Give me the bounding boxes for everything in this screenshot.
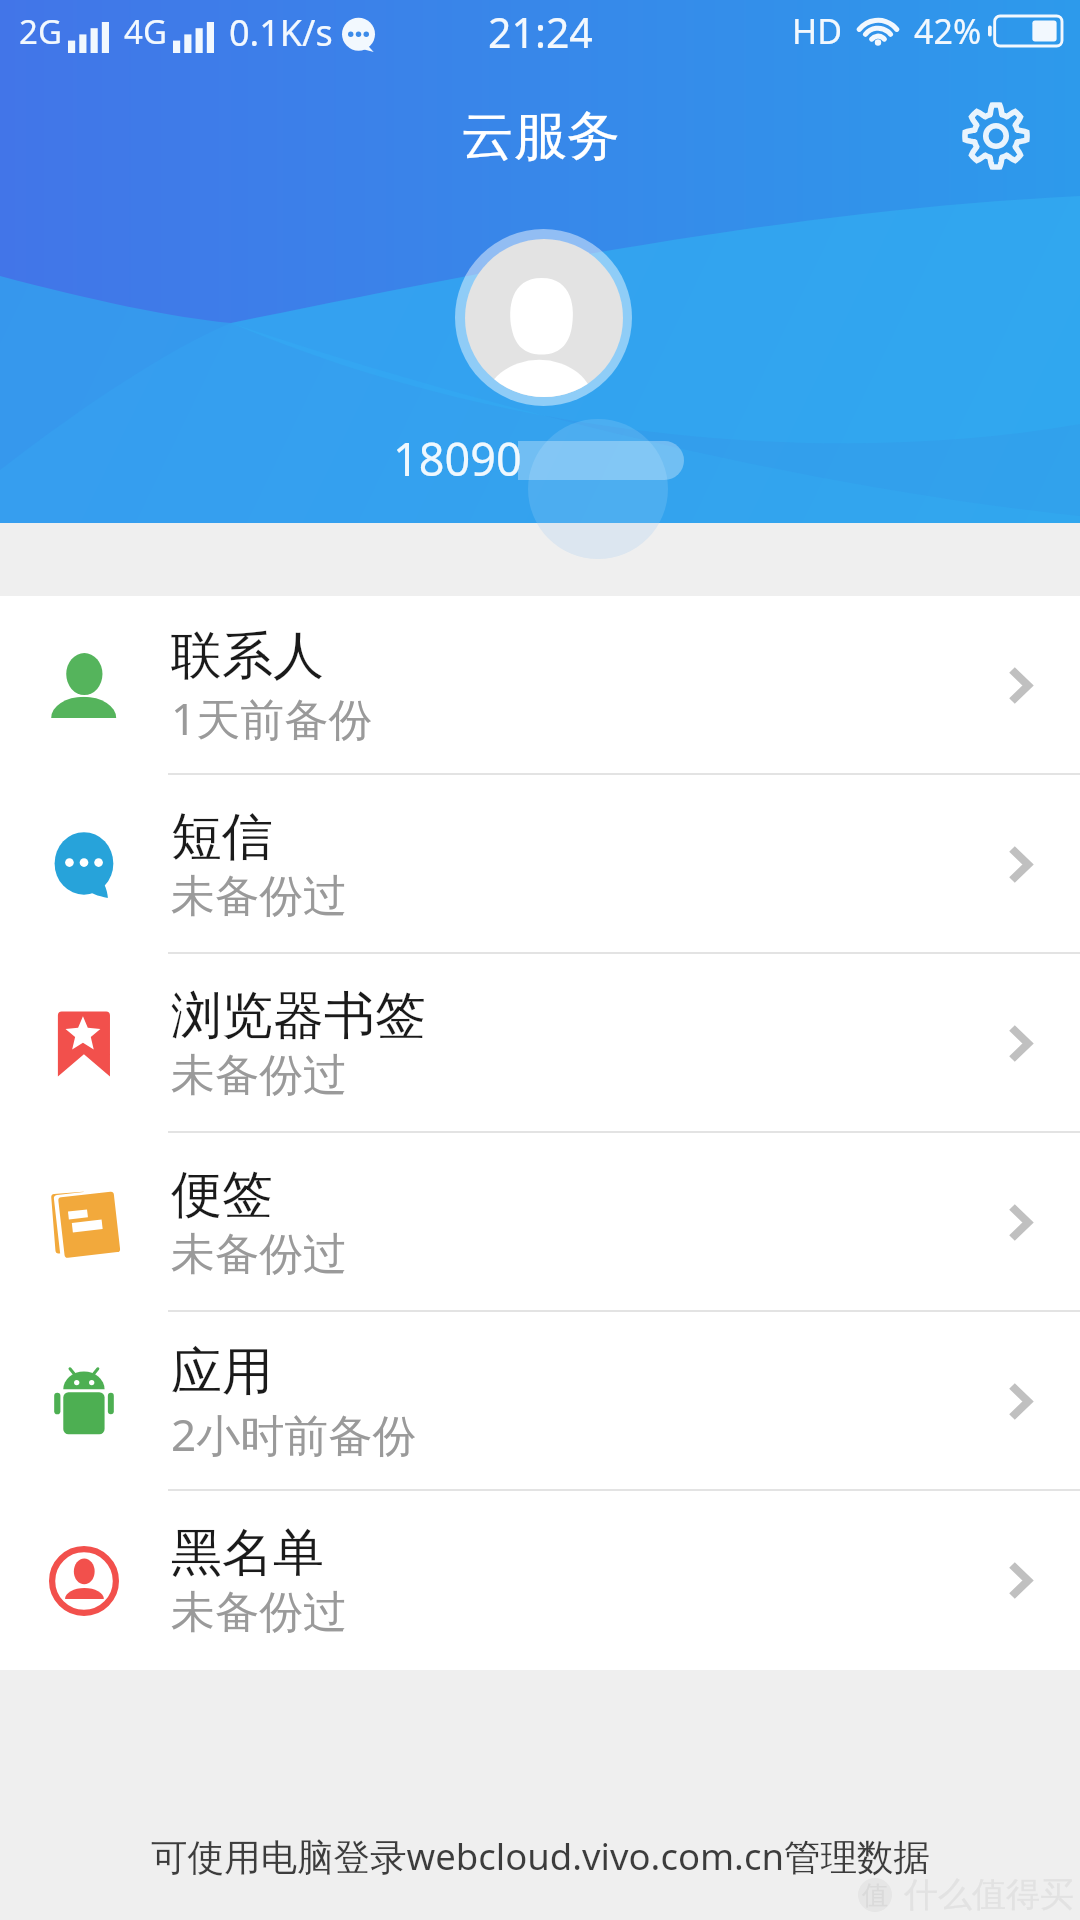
button[interactable]: 便签 (0, 1133, 1080, 1312)
staticText: 短信 (171, 805, 273, 869)
staticText: 未备份过 (171, 869, 347, 924)
staticText: 未备份过 (171, 1585, 347, 1640)
staticText: 2G (19, 9, 62, 54)
button[interactable]: 短信 (0, 775, 1080, 954)
staticText: 值 (862, 1879, 888, 1912)
staticText: 未备份过 (171, 1048, 347, 1103)
staticText: 便签 (171, 1163, 273, 1227)
staticText: 42% (914, 8, 982, 54)
staticText: 联系人 (171, 624, 324, 688)
staticText: 未备份过 (171, 1227, 347, 1282)
staticText: 黑名单 (171, 1521, 324, 1585)
button[interactable]: 联系人 (0, 596, 1080, 775)
staticText: 18090 (393, 428, 522, 489)
staticText: 可使用电脑登录webcloud.vivo.com.cn管理数据 (151, 1831, 930, 1881)
button[interactable]: Profile avatar (455, 229, 632, 406)
staticText: HD (792, 8, 843, 54)
staticText: 云服务 (461, 103, 620, 170)
button[interactable]: 浏览器书签 (0, 954, 1080, 1133)
staticText: 2小时前备份 (171, 1404, 417, 1464)
staticText: 浏览器书签 (171, 984, 426, 1048)
button[interactable]: 应用 (0, 1312, 1080, 1491)
staticText: 4G (124, 9, 167, 54)
staticText: 1天前备份 (171, 688, 373, 748)
staticText: 应用 (171, 1340, 273, 1404)
staticText: 0.1K/s (229, 8, 333, 57)
button[interactable]: Settings (950, 90, 1042, 182)
staticText: 什么值得买 (904, 1873, 1074, 1916)
staticText: 21:24 (488, 4, 593, 60)
button[interactable]: 黑名单 (0, 1491, 1080, 1670)
